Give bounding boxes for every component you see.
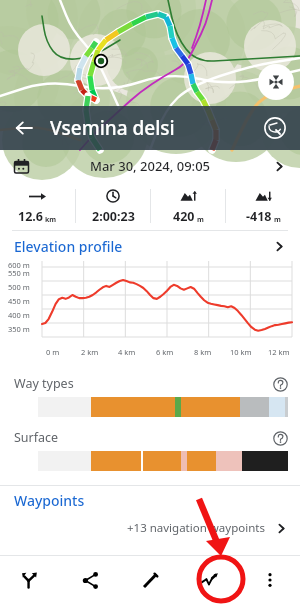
staticText: Waypoints xyxy=(14,491,85,510)
staticText: m xyxy=(197,215,204,225)
staticText: 2 km xyxy=(81,347,99,357)
staticText: 400 m xyxy=(8,310,30,320)
button[interactable]: -418 xyxy=(226,184,300,229)
button[interactable]: Map layers xyxy=(258,111,292,145)
button[interactable]: Edit xyxy=(120,556,180,604)
button[interactable]: Mar 30, 2024, 09:05 xyxy=(0,150,300,182)
staticText: 12 km xyxy=(268,347,290,357)
button[interactable]: +13 navigation waypoints xyxy=(0,514,300,542)
button[interactable]: Way types xyxy=(0,371,300,417)
staticText: 0 m xyxy=(46,347,60,357)
staticText: m xyxy=(274,215,281,225)
staticText: Surface xyxy=(14,429,59,446)
staticText: Elevation profile xyxy=(14,237,123,256)
staticText: 350 m xyxy=(8,324,30,334)
button[interactable]: Surface xyxy=(0,425,300,471)
staticText: km xyxy=(45,215,57,225)
button[interactable]: Back xyxy=(6,110,42,146)
button[interactable]: 12.6 xyxy=(0,184,75,229)
staticText: -418 xyxy=(246,208,272,225)
button[interactable]: Elevation profile xyxy=(0,231,300,261)
staticText: 420 xyxy=(173,208,195,225)
button[interactable]: 2:00:23 xyxy=(76,184,150,229)
button[interactable]: Navigate xyxy=(0,556,60,604)
staticText: 12.6 xyxy=(18,208,43,225)
staticText: Vsemina delsi xyxy=(50,115,258,141)
button[interactable]: Surface help xyxy=(272,430,288,446)
staticText: Way types xyxy=(14,375,74,392)
staticText: 2:00:23 xyxy=(92,208,135,225)
button[interactable]: Share xyxy=(60,556,120,604)
staticText: 10 km xyxy=(230,347,252,357)
button[interactable]: Way types help xyxy=(272,376,288,392)
staticText: 500 m xyxy=(8,282,30,292)
button[interactable]: Elevation xyxy=(180,556,240,604)
staticText: 600 m xyxy=(8,260,30,270)
staticText: Mar 30, 2024, 09:05 xyxy=(90,157,211,175)
staticText: 6 km xyxy=(156,347,174,357)
staticText: 8 km xyxy=(194,347,212,357)
staticText: +13 navigation waypoints xyxy=(127,520,265,536)
staticText: 550 m xyxy=(8,268,30,278)
button[interactable]: More options xyxy=(240,556,300,604)
staticText: 450 m xyxy=(8,296,30,306)
button[interactable]: Waypoints xyxy=(0,486,300,514)
button[interactable]: 420 xyxy=(151,184,225,229)
button[interactable]: Recenter map xyxy=(258,64,294,100)
staticText: 4 km xyxy=(118,347,136,357)
